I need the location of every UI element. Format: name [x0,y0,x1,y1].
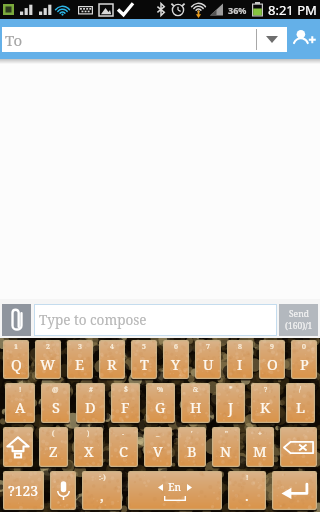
staticText: ' [191,429,193,439]
staticText: ) [87,429,90,439]
staticText: ! [246,473,249,483]
button[interactable]: Attach [2,304,31,336]
button[interactable]: ) [74,427,103,467]
staticText: A [15,397,26,417]
button[interactable]: " [212,427,240,467]
staticText: 7 [206,342,210,352]
staticText: Y [171,354,181,374]
button[interactable]: Shift [3,427,33,467]
button[interactable]: Enter [272,471,317,510]
staticText: + [258,429,262,439]
staticText: I [237,354,243,374]
button[interactable]: ! [5,383,35,423]
staticText: @ [52,385,59,395]
staticText: V [153,441,163,461]
button[interactable]: Type to compose [34,304,277,336]
button[interactable]: % [146,383,175,423]
staticText: T [140,354,149,374]
staticText: N [220,441,232,461]
staticText: ! [19,385,22,395]
button[interactable]: * [216,383,245,423]
staticText: ?123 [8,481,39,500]
staticText: 8 [238,342,242,352]
button[interactable]: Space [128,471,222,510]
staticText: 8:21 PM [268,1,317,19]
staticText: H [190,397,202,417]
button[interactable]: / [286,383,315,423]
staticText: _ [156,429,160,439]
button[interactable]: - [109,427,138,467]
staticText: " [225,429,228,439]
staticText: & [193,385,199,395]
staticText: / [299,385,302,395]
staticText: $ [124,385,128,395]
staticText: 3 [78,342,82,352]
staticText: To [5,30,256,50]
button[interactable]: ! [228,471,266,510]
button[interactable]: 0 [291,340,317,379]
staticText: Z [49,441,58,461]
button[interactable]: 1 [3,340,29,379]
button[interactable]: $ [111,383,140,423]
button[interactable]: # [76,383,105,423]
staticText: 2 [46,342,50,352]
button[interactable]: 2 [35,340,61,379]
button[interactable]: @ [41,383,70,423]
staticText: J [228,397,234,417]
staticText: ? [264,385,268,395]
staticText: 5 [142,342,146,352]
staticText: En [163,480,187,494]
button[interactable]: ? [251,383,280,423]
button[interactable]: 9 [259,340,285,379]
button[interactable]: 4 [99,340,125,379]
button[interactable]: Add recipient [287,19,320,59]
staticText: 6 [174,342,178,352]
staticText: :-) [99,473,106,483]
staticText: U [203,354,214,374]
button[interactable]: ( [39,427,68,467]
staticText: X [84,441,94,461]
button[interactable]: 8 [227,340,253,379]
staticText: * [229,385,233,395]
button[interactable]: + [246,427,274,467]
staticText: P [300,354,309,374]
button[interactable]: _ [144,427,172,467]
staticText: % [157,385,164,395]
staticText: 4 [110,342,114,352]
staticText: K [260,397,271,417]
button[interactable]: ' [178,427,206,467]
button[interactable]: 5 [131,340,157,379]
staticText: . [245,485,249,505]
staticText: - [122,429,125,439]
staticText: Q [11,354,22,374]
staticText: D [85,397,96,417]
staticText: 0 [302,342,306,352]
button[interactable]: 7 [195,340,221,379]
button[interactable]: Send [279,304,318,336]
button[interactable]: Backspace [280,427,317,467]
button[interactable]: Voice input [50,471,76,510]
button[interactable]: 6 [163,340,189,379]
button[interactable]: To [2,27,287,52]
staticText: E [75,354,85,374]
staticText: Type to compose [39,311,147,329]
staticText: ( [52,429,55,439]
staticText: # [89,385,93,395]
button[interactable]: 3 [67,340,93,379]
button[interactable]: & [181,383,210,423]
staticText: C [119,441,128,461]
staticText: L [296,397,306,417]
staticText: B [187,441,197,461]
staticText: 1 [14,342,18,352]
button[interactable]: :-) [82,471,122,510]
staticText: F [121,397,130,417]
staticText: R [107,354,117,374]
staticText: (160)/1 [285,320,313,332]
staticText: 36% [228,4,247,16]
staticText: Send [289,308,309,320]
staticText: W [40,354,56,374]
staticText: 9 [270,342,274,352]
staticText: S [52,397,60,417]
button[interactable]: Symbols [3,471,44,510]
staticText: O [267,354,278,374]
